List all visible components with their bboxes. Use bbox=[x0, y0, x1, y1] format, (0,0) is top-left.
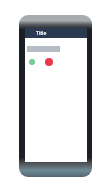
staticText: Title bbox=[36, 30, 47, 37]
button[interactable]: Record bbox=[45, 58, 53, 66]
button[interactable]: Menu bbox=[25, 28, 87, 38]
button[interactable]: Online bbox=[29, 59, 35, 65]
